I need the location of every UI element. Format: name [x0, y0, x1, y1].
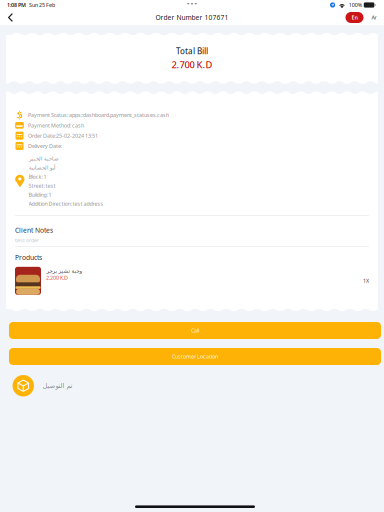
- staticText: Call: [191, 327, 199, 334]
- staticText: Products: [15, 253, 42, 262]
- button[interactable]: Customer Location: [9, 348, 381, 365]
- staticText: En: [351, 14, 357, 21]
- button[interactable]: Ar: [369, 12, 378, 23]
- staticText: وجبة تشيز برجر: [46, 268, 82, 274]
- staticText: Client Notes: [15, 226, 53, 235]
- staticText: Addition Direction: test address: [29, 200, 104, 207]
- staticText: Order Number 107671: [155, 13, 228, 22]
- staticText: 2.700 K.D: [171, 58, 212, 71]
- button[interactable]: En: [345, 12, 363, 23]
- staticText: 100%: [349, 1, 362, 9]
- button[interactable]: Call: [9, 322, 381, 339]
- staticText: Sun 25 Feb: [29, 1, 55, 9]
- staticText: Street: test: [29, 182, 56, 189]
- staticText: أبو الحصانية: [29, 165, 55, 171]
- staticText: Order Date:25-02-2024 13:51: [28, 132, 98, 139]
- staticText: Payment Method: cash: [28, 122, 84, 129]
- staticText: 1:08 PM: [7, 1, 26, 9]
- button[interactable]: Back: [3, 10, 18, 24]
- staticText: ضاحية الخبير: [29, 156, 59, 162]
- button[interactable]: Delivered: [12, 375, 34, 396]
- staticText: test order: [15, 237, 39, 244]
- staticText: Ar: [371, 14, 376, 21]
- staticText: Block: 1: [29, 173, 47, 180]
- staticText: 1X: [363, 277, 369, 284]
- staticText: Total Bill: [176, 46, 208, 56]
- staticText: Delivery Date:: [28, 142, 62, 149]
- staticText: Payment Status: apps::dashboard.payment_…: [28, 111, 169, 119]
- staticText: تم التوصيل: [42, 382, 72, 390]
- staticText: Building: 1: [29, 191, 52, 198]
- staticText: Customer Location: [172, 353, 218, 360]
- staticText: 2.200 K.D: [46, 274, 68, 281]
